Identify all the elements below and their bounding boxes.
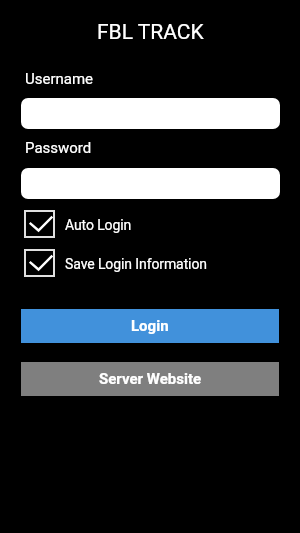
staticText: Server Website [99,370,202,388]
staticText: Auto Login [65,217,132,233]
staticText: Login [131,317,169,335]
button[interactable]: Server Website [21,362,279,396]
staticText: Save Login Information [65,256,207,272]
staticText: Username [25,70,94,88]
button[interactable] [21,98,280,129]
button[interactable] [24,249,55,277]
button[interactable]: Login [21,309,279,343]
button[interactable] [21,168,280,199]
button[interactable] [24,210,55,238]
staticText: FBL TRACK [97,20,204,45]
staticText: Password [25,139,92,157]
